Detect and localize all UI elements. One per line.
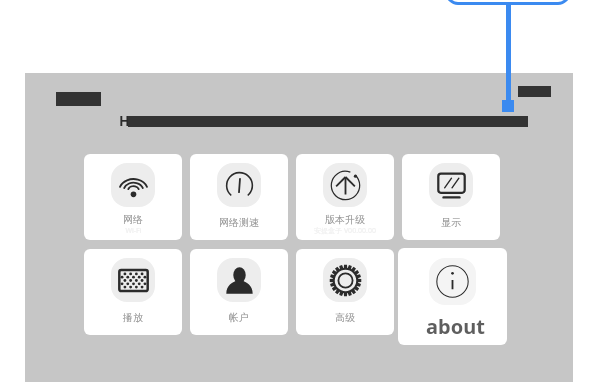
button[interactable]: Network bbox=[84, 154, 182, 240]
staticText: 网络 bbox=[123, 213, 143, 226]
staticText: 安提盒子 V00.00.00 bbox=[314, 226, 376, 236]
button[interactable]: Display bbox=[402, 154, 500, 240]
staticText: 帐户 bbox=[229, 311, 249, 324]
staticText: Wi-Fi bbox=[125, 226, 142, 236]
button[interactable]: Playback bbox=[84, 249, 182, 335]
button[interactable]: Advanced bbox=[296, 249, 394, 335]
button[interactable]: Upgrade bbox=[296, 154, 394, 240]
button[interactable]: Speed test bbox=[190, 154, 288, 240]
button[interactable]: About bbox=[398, 248, 507, 345]
staticText: 显示 bbox=[441, 216, 461, 229]
staticText: 高级 bbox=[335, 311, 355, 324]
button[interactable]: Account bbox=[190, 249, 288, 335]
staticText: about bbox=[426, 313, 485, 340]
staticText: H bbox=[119, 111, 130, 130]
staticText: 网络测速 bbox=[219, 216, 259, 229]
staticText: 版本升级 bbox=[325, 213, 365, 226]
staticText: 播放 bbox=[123, 311, 143, 324]
